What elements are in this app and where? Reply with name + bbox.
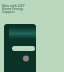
staticText: Now with 24/7 Home Energy Support	[2, 3, 25, 14]
button[interactable]	[12, 46, 35, 51]
